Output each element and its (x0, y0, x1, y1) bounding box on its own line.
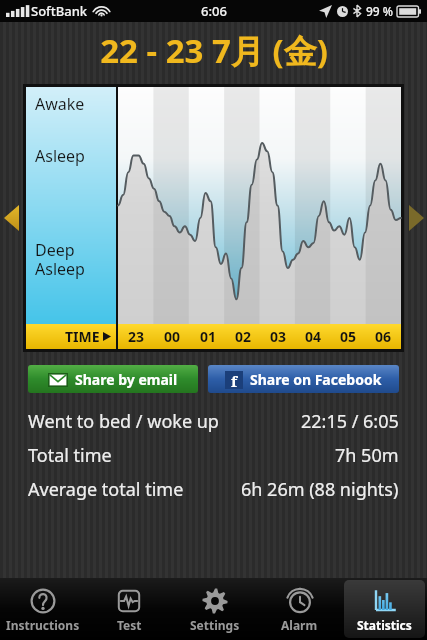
staticText: 6h 26m (88 nights) (241, 477, 399, 502)
button[interactable]: Settings (174, 580, 255, 638)
staticText: 03 (270, 327, 287, 346)
staticText: Asleep (35, 145, 85, 167)
staticText: 02 (235, 327, 252, 346)
staticText: 22:15 / 6:05 (301, 409, 399, 434)
button[interactable]: Test (88, 580, 170, 638)
staticText: 6:06 (201, 2, 227, 20)
staticText: Average total time (28, 477, 184, 502)
staticText: Total time (28, 443, 112, 468)
staticText: Test (117, 617, 142, 633)
staticText: Went to bed / woke up (28, 409, 219, 434)
button[interactable]: Share by email (28, 365, 198, 393)
button[interactable]: f (208, 365, 399, 393)
staticText: SoftBank (31, 2, 88, 20)
staticText: 05 (340, 327, 357, 346)
staticText: 00 (164, 327, 181, 346)
button[interactable]: Previous night (0, 188, 22, 248)
staticText: TIME (65, 327, 100, 346)
staticText: Share by email (75, 370, 178, 389)
button[interactable]: Instructions (2, 580, 84, 638)
staticText: Settings (190, 617, 240, 633)
staticText: 22 - 23 7月 (金) (100, 28, 328, 73)
button[interactable]: Next night (405, 188, 427, 248)
staticText: 06 (375, 327, 392, 346)
staticText: 23 (128, 327, 145, 346)
staticText: 01 (200, 327, 217, 346)
staticText: 99 % (366, 3, 394, 19)
staticText: Deep Asleep (35, 239, 85, 280)
staticText: f (231, 371, 238, 389)
button[interactable]: Statistics (344, 580, 425, 638)
button[interactable]: Alarm (259, 580, 340, 638)
staticText: 04 (305, 327, 322, 346)
staticText: Statistics (357, 617, 412, 633)
staticText: Awake (35, 93, 85, 115)
staticText: Share on Facebook (250, 370, 382, 389)
staticText: Alarm (281, 617, 318, 633)
staticText: 7h 50m (335, 443, 399, 468)
staticText: Instructions (6, 617, 80, 633)
